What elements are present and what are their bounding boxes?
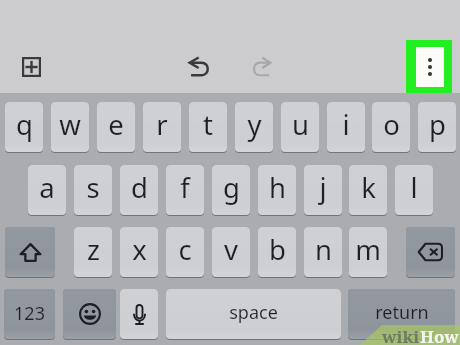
staticText: t [203,106,213,143]
staticText: i [342,106,350,143]
staticText: w [59,106,81,143]
button[interactable]: 123 [4,289,55,339]
button[interactable]: space [166,289,341,339]
button[interactable]: e [97,102,135,152]
staticText: x [132,231,147,268]
staticText: p [429,106,446,143]
staticText: 123 [14,301,45,326]
button[interactable]: b [258,227,296,277]
staticText: space [229,300,278,325]
button[interactable]: return [348,289,455,339]
button[interactable]: Insert [22,57,41,77]
button[interactable] [406,227,455,277]
staticText: y [247,106,262,143]
button[interactable]: y [235,102,273,152]
button[interactable]: More options [406,40,452,93]
staticText: z [87,231,100,268]
button[interactable]: a [28,165,66,215]
staticText: e [108,106,124,143]
staticText: m [355,231,381,268]
button[interactable]: x [120,227,158,277]
staticText: g [223,169,240,206]
button[interactable]: i [327,102,365,152]
staticText: r [156,106,168,143]
button[interactable]: s [74,165,112,215]
staticText: q [16,106,33,143]
button[interactable] [120,289,158,339]
staticText: v [224,231,238,268]
button[interactable]: u [281,102,319,152]
staticText: s [86,169,100,206]
staticText: b [269,231,286,268]
staticText: How [420,325,459,345]
staticText: j [319,169,327,206]
button[interactable]: z [74,227,112,277]
button[interactable] [5,227,55,277]
button[interactable] [63,289,116,339]
staticText: k [361,169,376,206]
button[interactable]: v [212,227,250,277]
staticText: h [269,169,286,206]
staticText: c [178,231,192,268]
button[interactable]: w [51,102,89,152]
staticText: n [315,231,332,268]
button[interactable]: l [395,165,433,215]
button[interactable]: d [120,165,158,215]
staticText: a [39,169,55,206]
button[interactable]: q [5,102,43,152]
button[interactable]: k [349,165,387,215]
button[interactable]: g [212,165,250,215]
button[interactable]: h [258,165,296,215]
button[interactable]: Undo [189,57,210,76]
staticText: l [410,169,418,206]
button[interactable]: p [418,102,456,152]
button[interactable]: j [304,165,342,215]
button[interactable]: m [349,227,387,277]
button[interactable]: r [143,102,181,152]
staticText: wiki [382,325,420,345]
staticText: o [383,106,400,143]
staticText: return [375,300,429,325]
button[interactable]: o [372,102,410,152]
staticText: u [292,106,309,143]
staticText: f [180,169,190,206]
button[interactable]: n [304,227,342,277]
button[interactable]: f [166,165,204,215]
button[interactable]: c [166,227,204,277]
button[interactable]: t [189,102,227,152]
button[interactable]: Redo [252,57,271,76]
staticText: d [131,169,148,206]
